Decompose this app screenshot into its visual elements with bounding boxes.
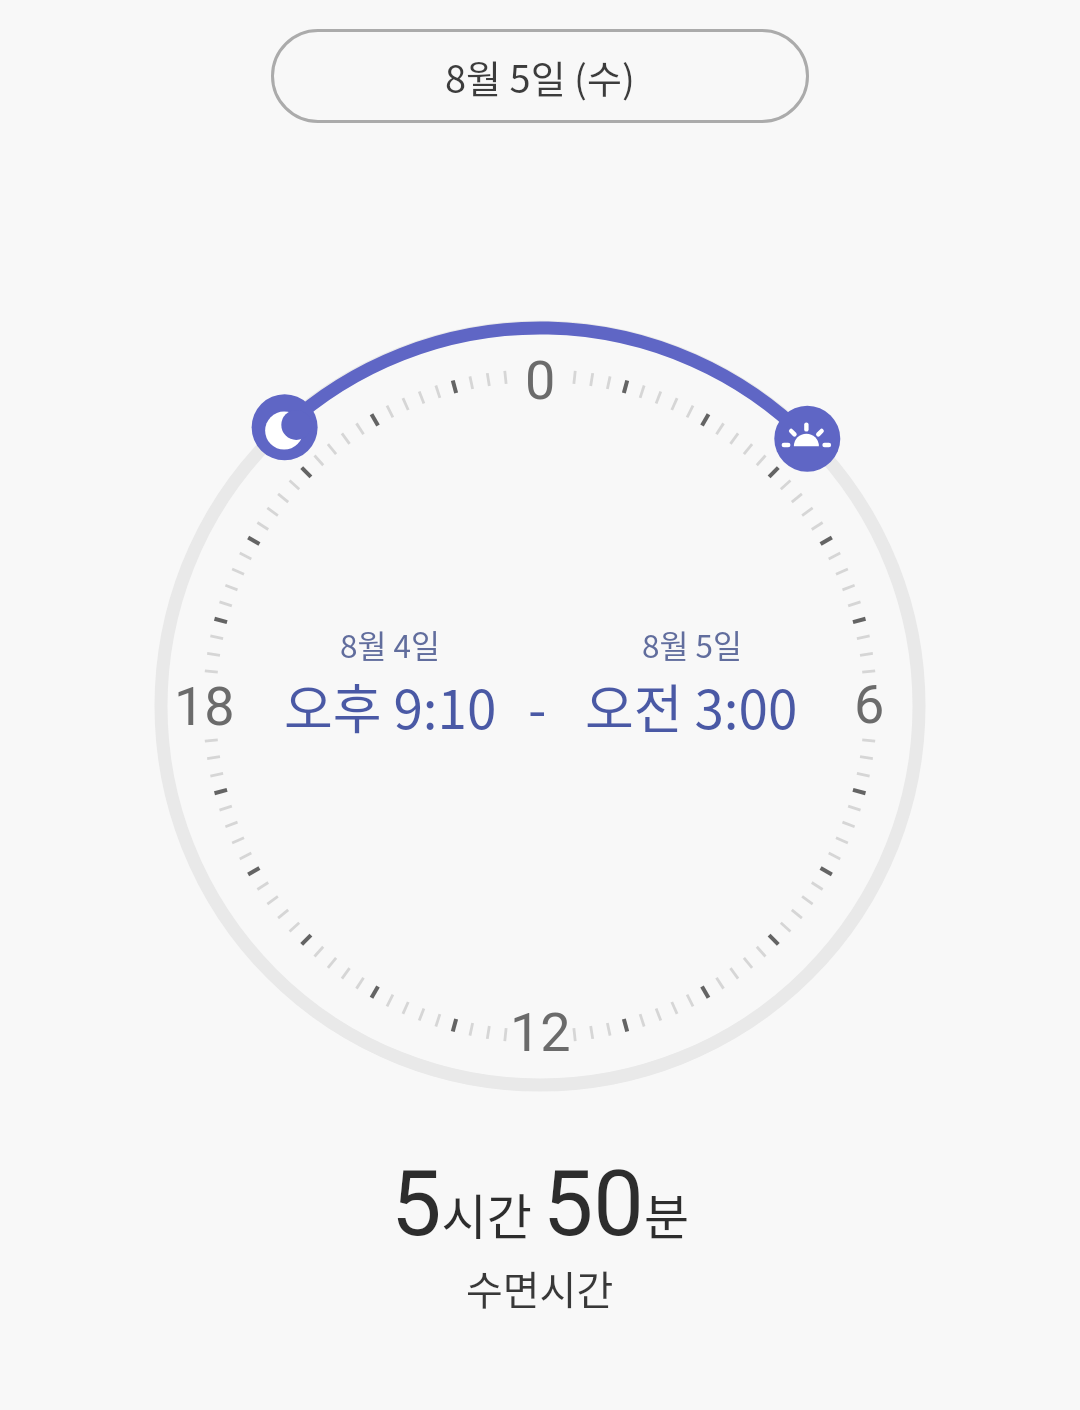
staticText: 오후 9:10 <box>284 668 497 745</box>
staticText: 12 <box>510 1001 571 1064</box>
staticText: 5시간 50분 <box>391 1152 689 1257</box>
staticText: 0 <box>525 349 556 412</box>
button[interactable]: 8월 5일 (수) <box>271 29 809 123</box>
staticText: 오전 3:00 <box>585 668 798 745</box>
button[interactable]: 오후 9:10 <box>210 661 570 751</box>
staticText: 18 <box>174 675 235 738</box>
staticText: 8월 5일 (수) <box>445 49 635 104</box>
button[interactable]: 오전 3:00 <box>511 661 871 751</box>
staticText: 8월 4일 <box>340 621 440 667</box>
staticText: 수면시간 <box>466 1259 614 1317</box>
staticText: 6 <box>854 673 885 736</box>
staticText: 8월 5일 <box>642 621 742 667</box>
staticText: - <box>528 668 547 745</box>
